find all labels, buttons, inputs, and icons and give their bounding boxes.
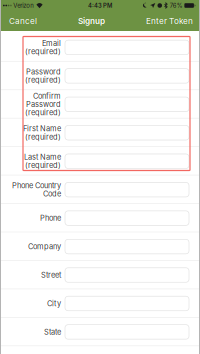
button[interactable]: City [0, 289, 200, 318]
staticText: (required) [25, 108, 61, 117]
staticText: Password [26, 67, 61, 76]
button[interactable]: First Name [0, 119, 200, 147]
button[interactable]: Password [0, 62, 200, 90]
staticText: Enter Token [146, 16, 193, 26]
staticText: Code [43, 189, 61, 198]
staticText: 4:43 PM [88, 2, 112, 9]
button[interactable]: Confirm [0, 90, 200, 118]
button[interactable]: Last Name [0, 147, 200, 175]
button[interactable]: State [0, 318, 200, 346]
staticText: (required) [25, 47, 61, 56]
staticText: Verizon [13, 2, 34, 9]
button[interactable]: Street [0, 261, 200, 289]
staticText: (required) [25, 75, 61, 84]
staticText: Cancel [9, 16, 37, 26]
button[interactable]: Cancel [0, 11, 42, 31]
staticText: (required) [25, 161, 61, 170]
staticText: Last Name [24, 153, 61, 162]
button[interactable]: Phone Country [0, 175, 200, 204]
staticText: Company [28, 242, 61, 251]
button[interactable]: Company [0, 232, 200, 261]
staticText: City [47, 299, 61, 308]
staticText: Confirm [33, 91, 61, 100]
staticText: (required) [25, 132, 61, 141]
button[interactable]: Enter Token [141, 11, 200, 31]
staticText: State [44, 327, 61, 336]
staticText: Phone Country [12, 181, 61, 190]
button[interactable]: Phone [0, 204, 200, 232]
staticText: Signup [78, 16, 105, 26]
button[interactable]: Email [0, 33, 200, 62]
staticText: Phone [40, 214, 61, 223]
staticText: 76% [170, 2, 183, 9]
staticText: Password [26, 100, 61, 109]
staticText: First Name [23, 124, 61, 133]
staticText: Street [41, 270, 61, 279]
staticText: Email [42, 39, 61, 48]
